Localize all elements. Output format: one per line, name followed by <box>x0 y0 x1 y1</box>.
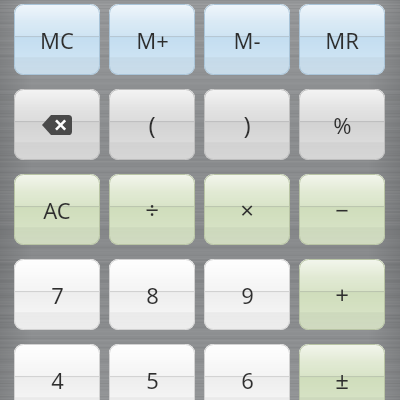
button[interactable]: 8 <box>109 259 195 330</box>
button[interactable]: ) <box>204 89 290 160</box>
staticText: % <box>333 110 352 140</box>
button[interactable]: ÷ <box>109 174 195 245</box>
button[interactable]: M+ <box>109 4 195 75</box>
staticText: + <box>335 278 349 311</box>
button[interactable]: − <box>299 174 385 245</box>
button[interactable]: MR <box>299 4 385 75</box>
staticText: 9 <box>241 280 254 310</box>
button[interactable]: 4 <box>14 344 100 400</box>
button[interactable]: Backspace <box>14 89 100 160</box>
button[interactable]: AC <box>14 174 100 245</box>
staticText: AC <box>43 195 71 225</box>
staticText: − <box>335 193 349 226</box>
staticText: ) <box>243 108 251 141</box>
staticText: ± <box>335 363 349 396</box>
button[interactable]: 9 <box>204 259 290 330</box>
button[interactable]: 5 <box>109 344 195 400</box>
staticText: ( <box>148 108 156 141</box>
staticText: MR <box>325 25 359 55</box>
staticText: MC <box>40 25 74 55</box>
button[interactable]: ± <box>299 344 385 400</box>
button[interactable]: ( <box>109 89 195 160</box>
staticText: 5 <box>146 365 159 395</box>
staticText: M- <box>233 25 261 55</box>
staticText: 8 <box>146 280 159 310</box>
staticText: ÷ <box>145 193 159 226</box>
button[interactable]: % <box>299 89 385 160</box>
staticText: 7 <box>51 280 64 310</box>
button[interactable]: 7 <box>14 259 100 330</box>
button[interactable]: MC <box>14 4 100 75</box>
button[interactable]: × <box>204 174 290 245</box>
staticText: 4 <box>51 365 64 395</box>
staticText: × <box>240 193 254 226</box>
button[interactable]: + <box>299 259 385 330</box>
button[interactable]: 6 <box>204 344 290 400</box>
staticText: M+ <box>136 25 169 55</box>
button[interactable]: M- <box>204 4 290 75</box>
staticText: 6 <box>241 365 254 395</box>
